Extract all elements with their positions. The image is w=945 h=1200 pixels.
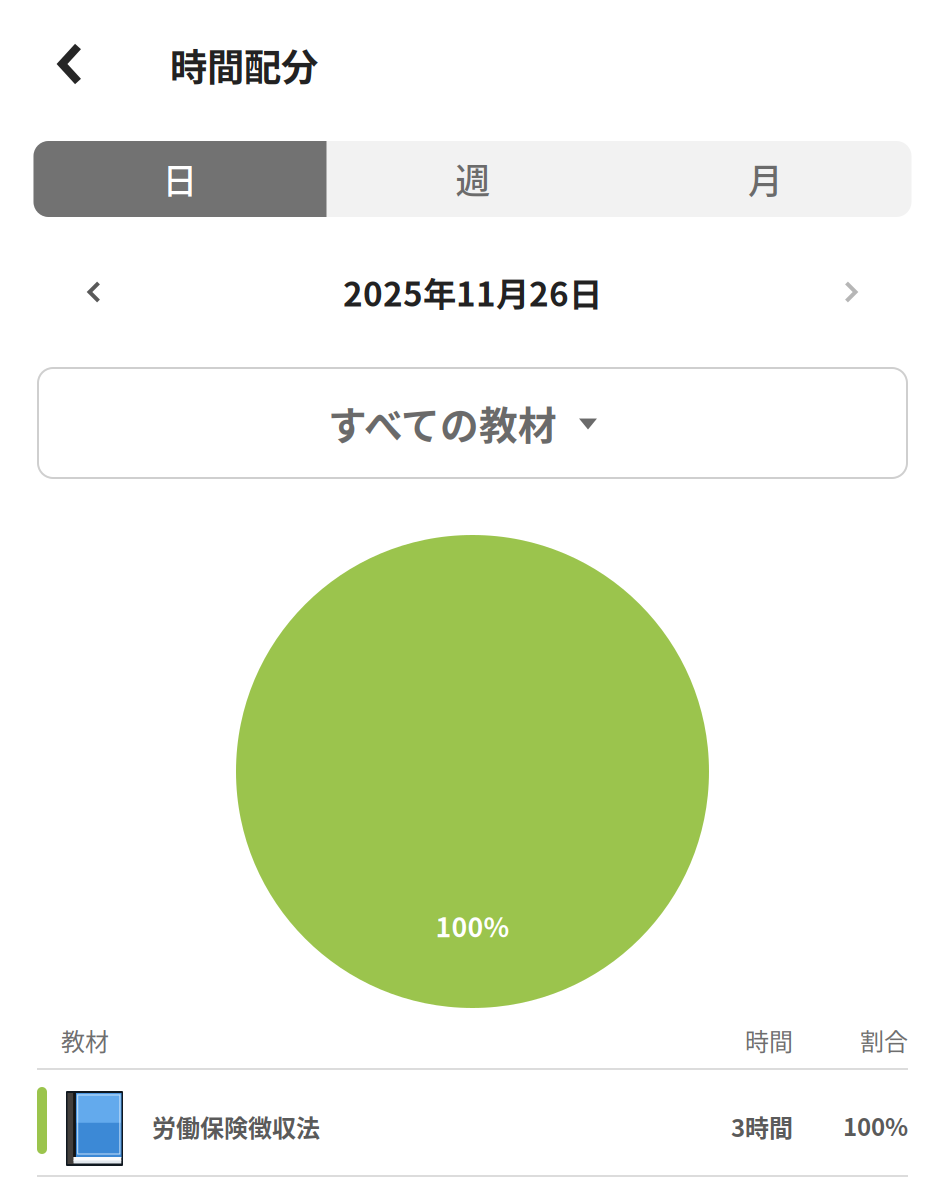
button[interactable]: 戻る <box>36 0 104 110</box>
staticText: 労働保険徴収法 <box>152 1109 320 1144</box>
staticText: 3時間 <box>731 1109 793 1144</box>
staticText: 週 <box>455 154 490 204</box>
button[interactable]: 前の日 <box>58 256 130 328</box>
staticText: 月 <box>748 154 783 204</box>
button[interactable]: 次の日 <box>815 256 887 328</box>
button[interactable]: すべての教材 <box>38 368 907 478</box>
staticText: すべての教材 <box>328 395 557 451</box>
button[interactable]: 労働保険徴収法 <box>37 1070 908 1175</box>
staticText: 教材 <box>61 1023 109 1057</box>
staticText: 日 <box>162 154 197 204</box>
button[interactable]: 月 <box>619 141 911 217</box>
staticText: 時間 <box>745 1023 793 1057</box>
staticText: 100% <box>435 906 509 945</box>
staticText: 2025年11月26日 <box>343 268 602 316</box>
staticText: 時間配分 <box>170 38 318 92</box>
staticText: 100% <box>843 1108 908 1143</box>
staticText: 割合 <box>860 1023 908 1057</box>
button[interactable]: 日 <box>33 141 326 217</box>
button[interactable]: 週 <box>326 141 619 217</box>
